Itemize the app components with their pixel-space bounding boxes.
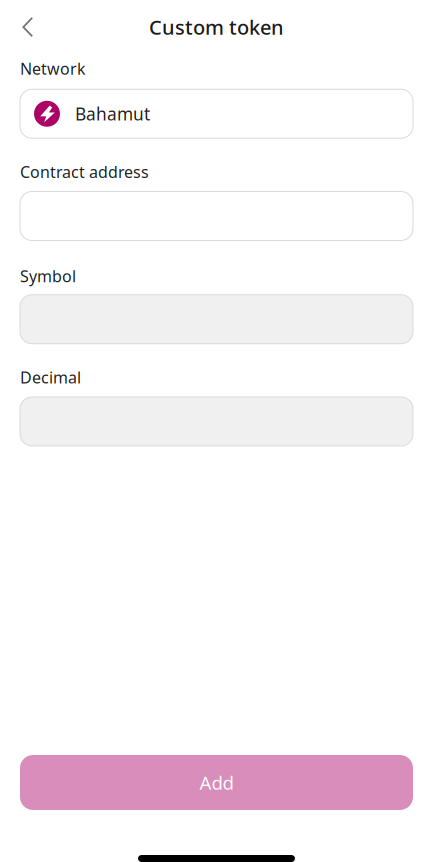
button[interactable]: Back [0, 5, 48, 48]
staticText: Decimal [20, 367, 81, 388]
staticText: Bahamut [75, 102, 150, 125]
staticText: Add [199, 770, 233, 795]
button[interactable]: Add [20, 755, 413, 810]
staticText: Contract address [20, 161, 149, 182]
staticText: Custom token [149, 14, 284, 40]
button[interactable]: Bahamut [20, 89, 413, 138]
staticText: Symbol [20, 265, 76, 287]
staticText: Network [20, 58, 86, 79]
